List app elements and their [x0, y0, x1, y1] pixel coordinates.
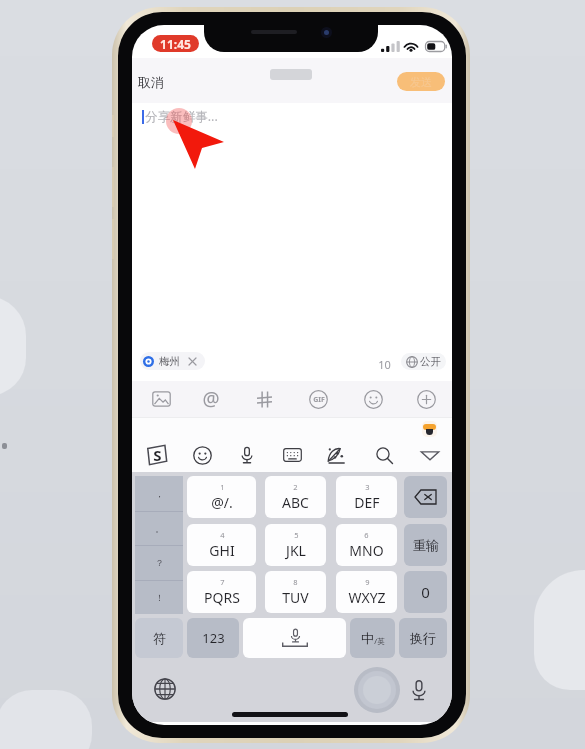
- staticText: 123: [202, 629, 225, 647]
- staticText: MNO: [349, 541, 384, 560]
- button[interactable]: Topic: [247, 382, 281, 416]
- button[interactable]: GIF: [301, 382, 335, 416]
- staticText: 取消: [138, 74, 164, 90]
- staticText: ，: [155, 488, 164, 499]
- button[interactable]: 4: [187, 524, 256, 566]
- staticText: 符: [153, 630, 166, 646]
- staticText: S: [153, 445, 162, 465]
- button[interactable]: 梅州: [140, 352, 205, 370]
- button[interactable]: 取消: [134, 70, 168, 94]
- button[interactable]: Handwriting: [321, 439, 353, 471]
- staticText: 中: [361, 630, 374, 646]
- staticText: @/.: [211, 493, 233, 512]
- staticText: 分享新鲜事...: [145, 108, 218, 125]
- button[interactable]: Switch language: [152, 676, 178, 702]
- staticText: 2: [293, 482, 298, 492]
- staticText: PQRS: [204, 588, 240, 607]
- button[interactable]: ！: [135, 580, 183, 615]
- staticText: 4: [220, 530, 225, 540]
- staticText: GHI: [209, 541, 235, 560]
- staticText: 6: [364, 530, 369, 540]
- staticText: 。: [155, 523, 164, 534]
- staticText: 换行: [410, 630, 436, 646]
- button[interactable]: Add image: [144, 382, 178, 416]
- button[interactable]: Backspace: [404, 476, 447, 518]
- staticText: ABC: [282, 493, 309, 512]
- staticText: 9: [365, 577, 370, 587]
- staticText: 8: [293, 577, 298, 587]
- staticText: ！: [155, 592, 164, 603]
- button[interactable]: 0: [404, 571, 447, 613]
- staticText: TUV: [282, 588, 309, 607]
- button[interactable]: Search: [368, 439, 400, 471]
- staticText: 3: [365, 482, 370, 492]
- button[interactable]: 123: [187, 618, 239, 658]
- button[interactable]: Keyboard layout: [276, 439, 308, 471]
- button[interactable]: 8: [265, 571, 326, 613]
- button[interactable]: 符: [135, 618, 183, 658]
- button[interactable]: 换行: [399, 618, 447, 658]
- button[interactable]: Voice input: [231, 439, 263, 471]
- button[interactable]: 5: [265, 524, 326, 566]
- button[interactable]: 公开: [401, 353, 446, 370]
- button[interactable]: 中: [350, 618, 395, 658]
- staticText: DEF: [354, 493, 380, 512]
- staticText: WXYZ: [348, 588, 386, 607]
- button[interactable]: 2: [265, 476, 326, 518]
- staticText: 10: [378, 357, 391, 372]
- button[interactable]: Dictate: [406, 677, 432, 703]
- staticText: 7: [220, 577, 225, 587]
- button[interactable]: Emoji: [186, 439, 218, 471]
- staticText: 1: [220, 482, 225, 492]
- button[interactable]: Hide keyboard: [414, 439, 446, 471]
- staticText: 公开: [420, 355, 441, 368]
- button[interactable]: 发送: [397, 72, 445, 91]
- staticText: /英: [374, 636, 385, 646]
- staticText: 5: [294, 530, 299, 540]
- button[interactable]: Sogou input: [141, 439, 173, 471]
- button[interactable]: 1: [187, 476, 256, 518]
- staticText: 0: [421, 582, 430, 602]
- button[interactable]: 7: [187, 571, 256, 613]
- staticText: 11:45: [160, 36, 191, 52]
- staticText: GIF: [313, 395, 325, 405]
- staticText: 梅州: [159, 355, 180, 368]
- button[interactable]: Voice input: [243, 618, 346, 658]
- button[interactable]: ？: [135, 545, 183, 580]
- button[interactable]: Emoji: [356, 382, 390, 416]
- button[interactable]: More: [409, 382, 443, 416]
- staticText: @: [202, 386, 220, 412]
- staticText: JKL: [286, 541, 306, 560]
- button[interactable]: 9: [336, 571, 397, 613]
- staticText: 重输: [413, 537, 439, 553]
- button[interactable]: 3: [336, 476, 397, 518]
- staticText: 发送: [410, 75, 432, 89]
- button[interactable]: 。: [135, 511, 183, 546]
- button[interactable]: Mention: [194, 382, 228, 416]
- button[interactable]: 重输: [404, 524, 447, 566]
- button[interactable]: 6: [336, 524, 397, 566]
- staticText: ？: [155, 557, 164, 568]
